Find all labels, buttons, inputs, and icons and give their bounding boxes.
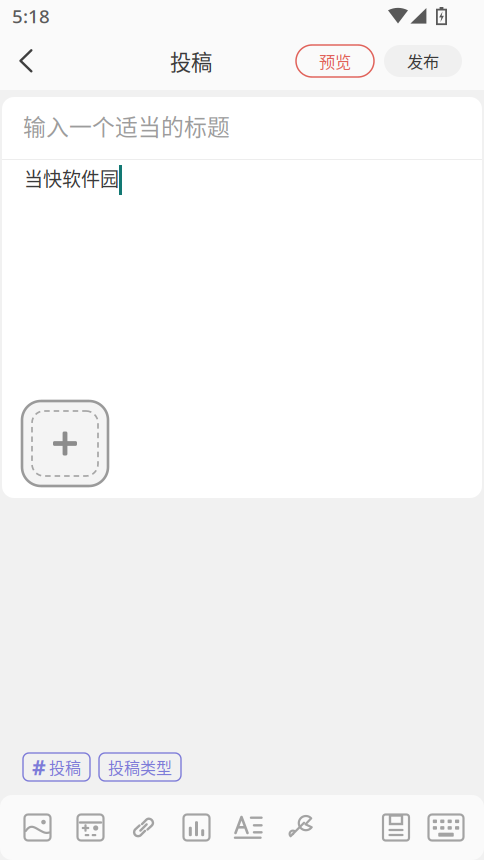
staticText: 预览	[319, 49, 351, 73]
button[interactable]: Tools	[276, 799, 329, 855]
button[interactable]: Insert sticker	[64, 799, 117, 855]
button[interactable]: Save draft	[371, 799, 421, 855]
button[interactable]: Back	[0, 35, 52, 87]
button[interactable]: 投稿类型	[99, 753, 181, 781]
staticText: 投稿	[170, 46, 212, 76]
button[interactable]: #	[23, 753, 90, 781]
button[interactable]: Insert link	[117, 799, 170, 855]
button[interactable]: Keyboard	[421, 799, 471, 855]
button[interactable]: Text formatting	[223, 799, 276, 855]
button[interactable]: Insert image	[11, 799, 64, 855]
staticText: 当快软件园	[24, 164, 119, 192]
staticText: 投稿	[49, 755, 81, 779]
button[interactable]: 发布	[384, 45, 462, 77]
button[interactable]: Insert chart	[170, 799, 223, 855]
button[interactable]: 预览	[296, 45, 374, 77]
staticText: 发布	[407, 49, 439, 73]
staticText: 5:18	[12, 4, 50, 28]
staticText: #	[32, 753, 46, 781]
staticText: 投稿类型	[108, 755, 172, 779]
button[interactable]: Add image	[22, 401, 108, 486]
staticText: 输入一个适当的标题	[23, 109, 230, 142]
